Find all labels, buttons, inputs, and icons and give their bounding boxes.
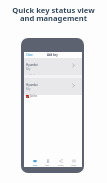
staticText: Key xyxy=(26,67,31,71)
staticText: Add key xyxy=(47,53,58,57)
staticText: More xyxy=(71,164,77,167)
staticText: Cars xyxy=(45,164,50,167)
staticText: Hyundai xyxy=(26,63,38,67)
button[interactable]: Share xyxy=(54,153,67,167)
button[interactable]: Hyundai xyxy=(24,78,82,95)
staticText: Key xyxy=(26,87,31,91)
staticText: Active xyxy=(30,94,38,98)
button[interactable]: Close xyxy=(24,52,35,58)
staticText: Hyundai xyxy=(26,83,38,87)
button[interactable]: Cars xyxy=(41,153,54,167)
staticText: Share xyxy=(58,164,64,167)
button[interactable]: Hyundai xyxy=(24,58,82,75)
staticText: Active xyxy=(30,74,38,78)
staticText: Keys xyxy=(33,164,38,167)
button[interactable]: Keys xyxy=(29,153,41,167)
staticText: Quick key status view and management xyxy=(0,5,107,23)
staticText: Close xyxy=(26,53,33,57)
button[interactable]: More xyxy=(67,153,80,167)
